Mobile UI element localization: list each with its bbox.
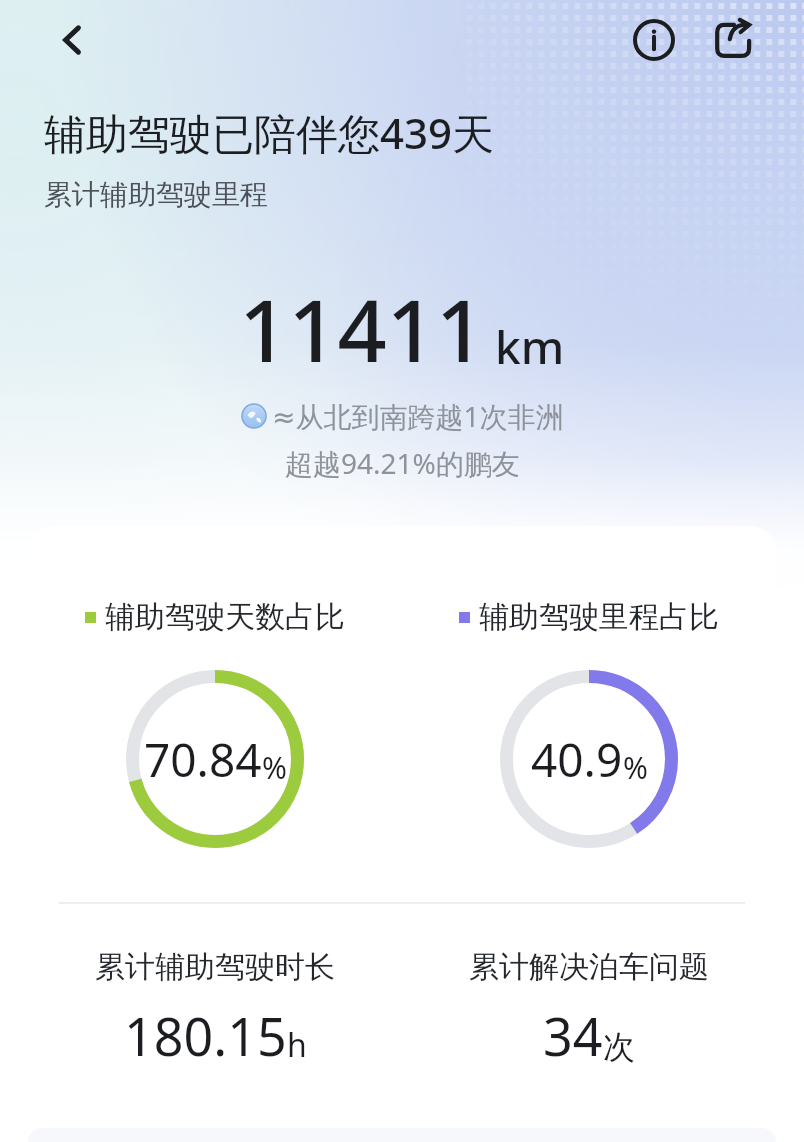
staticText: 40.9 [531, 728, 623, 791]
staticText: 辅助驾驶已陪伴您439天 [44, 104, 495, 161]
button[interactable]: 辅助驾驶里程占比 [402, 598, 776, 848]
button[interactable]: Back [45, 13, 99, 67]
staticText: % [262, 747, 287, 788]
button[interactable]: 累计辅助驾驶时长 [28, 948, 402, 1071]
button[interactable]: Share [707, 13, 761, 67]
staticText: 次 [603, 1027, 635, 1067]
staticText: 累计解决泊车问题 [469, 948, 709, 986]
staticText: % [623, 747, 648, 788]
staticText: h [287, 1023, 307, 1067]
staticText: 34 [543, 1000, 603, 1071]
button[interactable]: 辅助驾驶天数占比 [28, 598, 402, 848]
staticText: 超越94.21%的鹏友 [285, 444, 520, 482]
button[interactable]: Info [627, 13, 681, 67]
staticText: 累计辅助驾驶时长 [95, 948, 335, 986]
staticText: 辅助驾驶天数占比 [105, 598, 345, 636]
staticText: ≈从北到南跨越1次非洲 [272, 397, 564, 435]
staticText: 辅助驾驶里程占比 [479, 598, 719, 636]
button[interactable]: 累计解决泊车问题 [402, 948, 776, 1071]
staticText: 180.15 [124, 1000, 287, 1071]
staticText: km [495, 315, 565, 378]
staticText: 70.84 [144, 728, 262, 791]
staticText: 11411 [239, 270, 485, 387]
staticText: 累计辅助驾驶里程 [44, 177, 268, 212]
